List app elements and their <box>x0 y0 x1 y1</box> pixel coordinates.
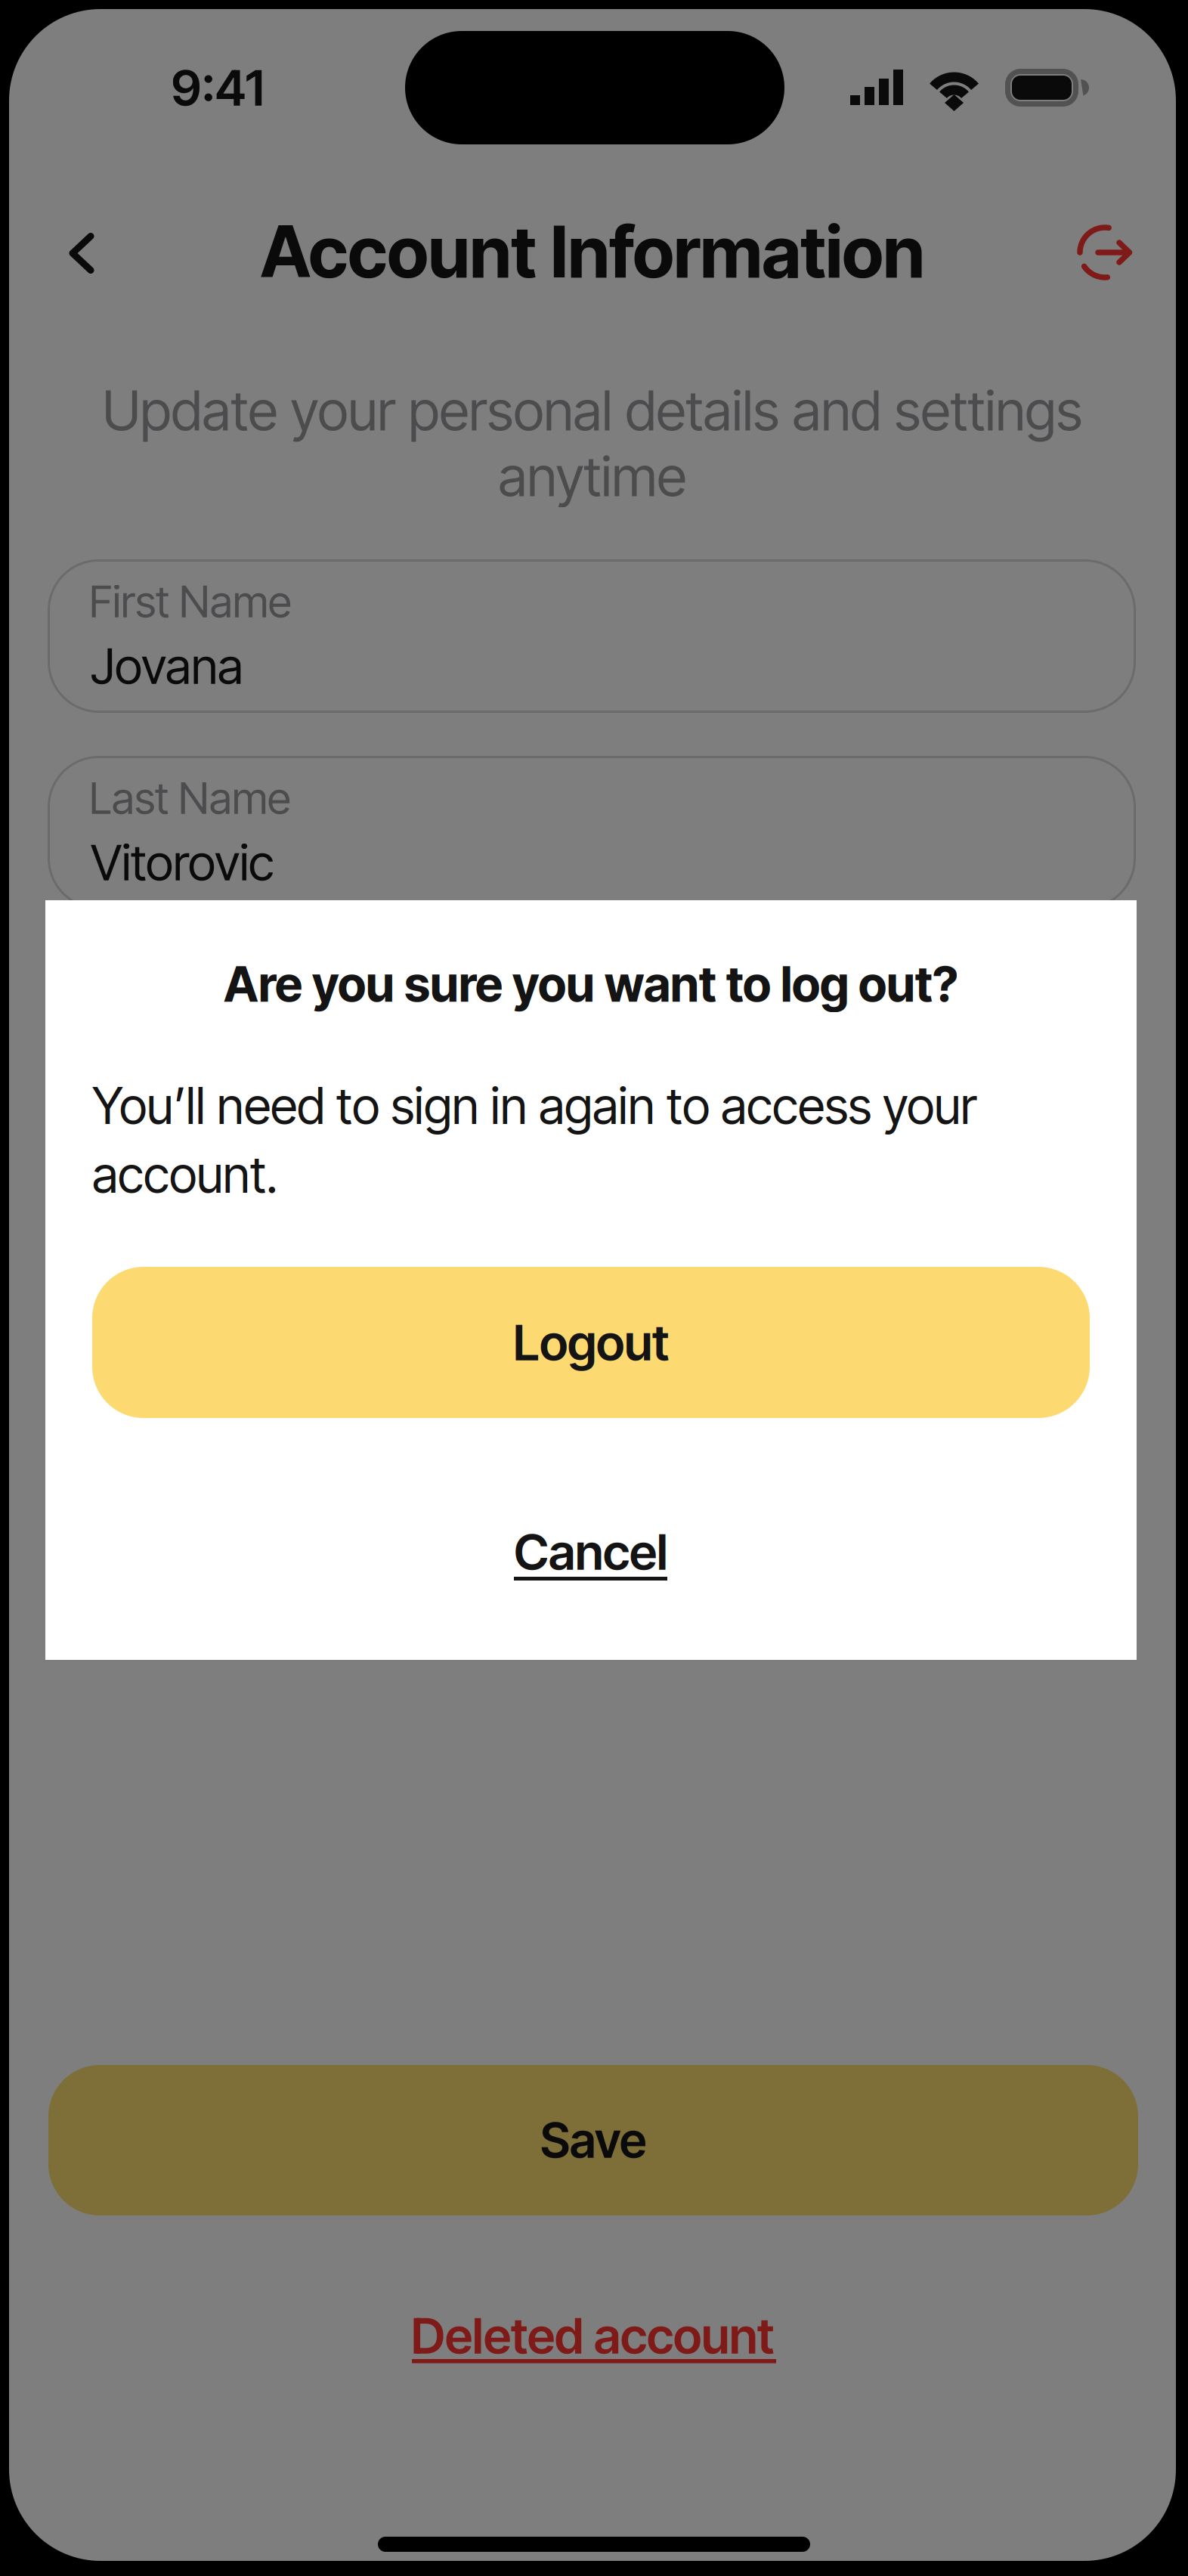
staticText: Update your personal details and setting… <box>102 377 1083 444</box>
staticText: Are you sure you want to log out? <box>224 955 958 1013</box>
staticText: Jovana <box>91 636 243 696</box>
staticText: anytime <box>498 443 687 509</box>
button[interactable]: Save <box>48 2065 1138 2215</box>
button[interactable]: Cancel <box>402 1503 780 1593</box>
button[interactable]: Log out <box>1061 212 1152 296</box>
staticText: Last Name <box>89 772 291 824</box>
button[interactable]: Back <box>36 212 127 295</box>
staticText: First Name <box>89 575 292 628</box>
staticText: account. <box>92 1144 278 1205</box>
staticText: Logout <box>513 1313 669 1372</box>
staticText: Vitorovic <box>91 833 274 892</box>
staticText: Deleted account <box>411 2306 774 2365</box>
staticText: Save <box>540 2111 646 2169</box>
staticText: Cancel <box>514 1522 668 1582</box>
staticText: Account Information <box>260 209 925 294</box>
staticText: You’ll need to sign in again to access y… <box>92 1076 976 1136</box>
button[interactable]: Deleted account <box>9 2294 1176 2385</box>
button[interactable]: Logout <box>92 1267 1090 1418</box>
staticText: 9:41 <box>171 58 264 118</box>
